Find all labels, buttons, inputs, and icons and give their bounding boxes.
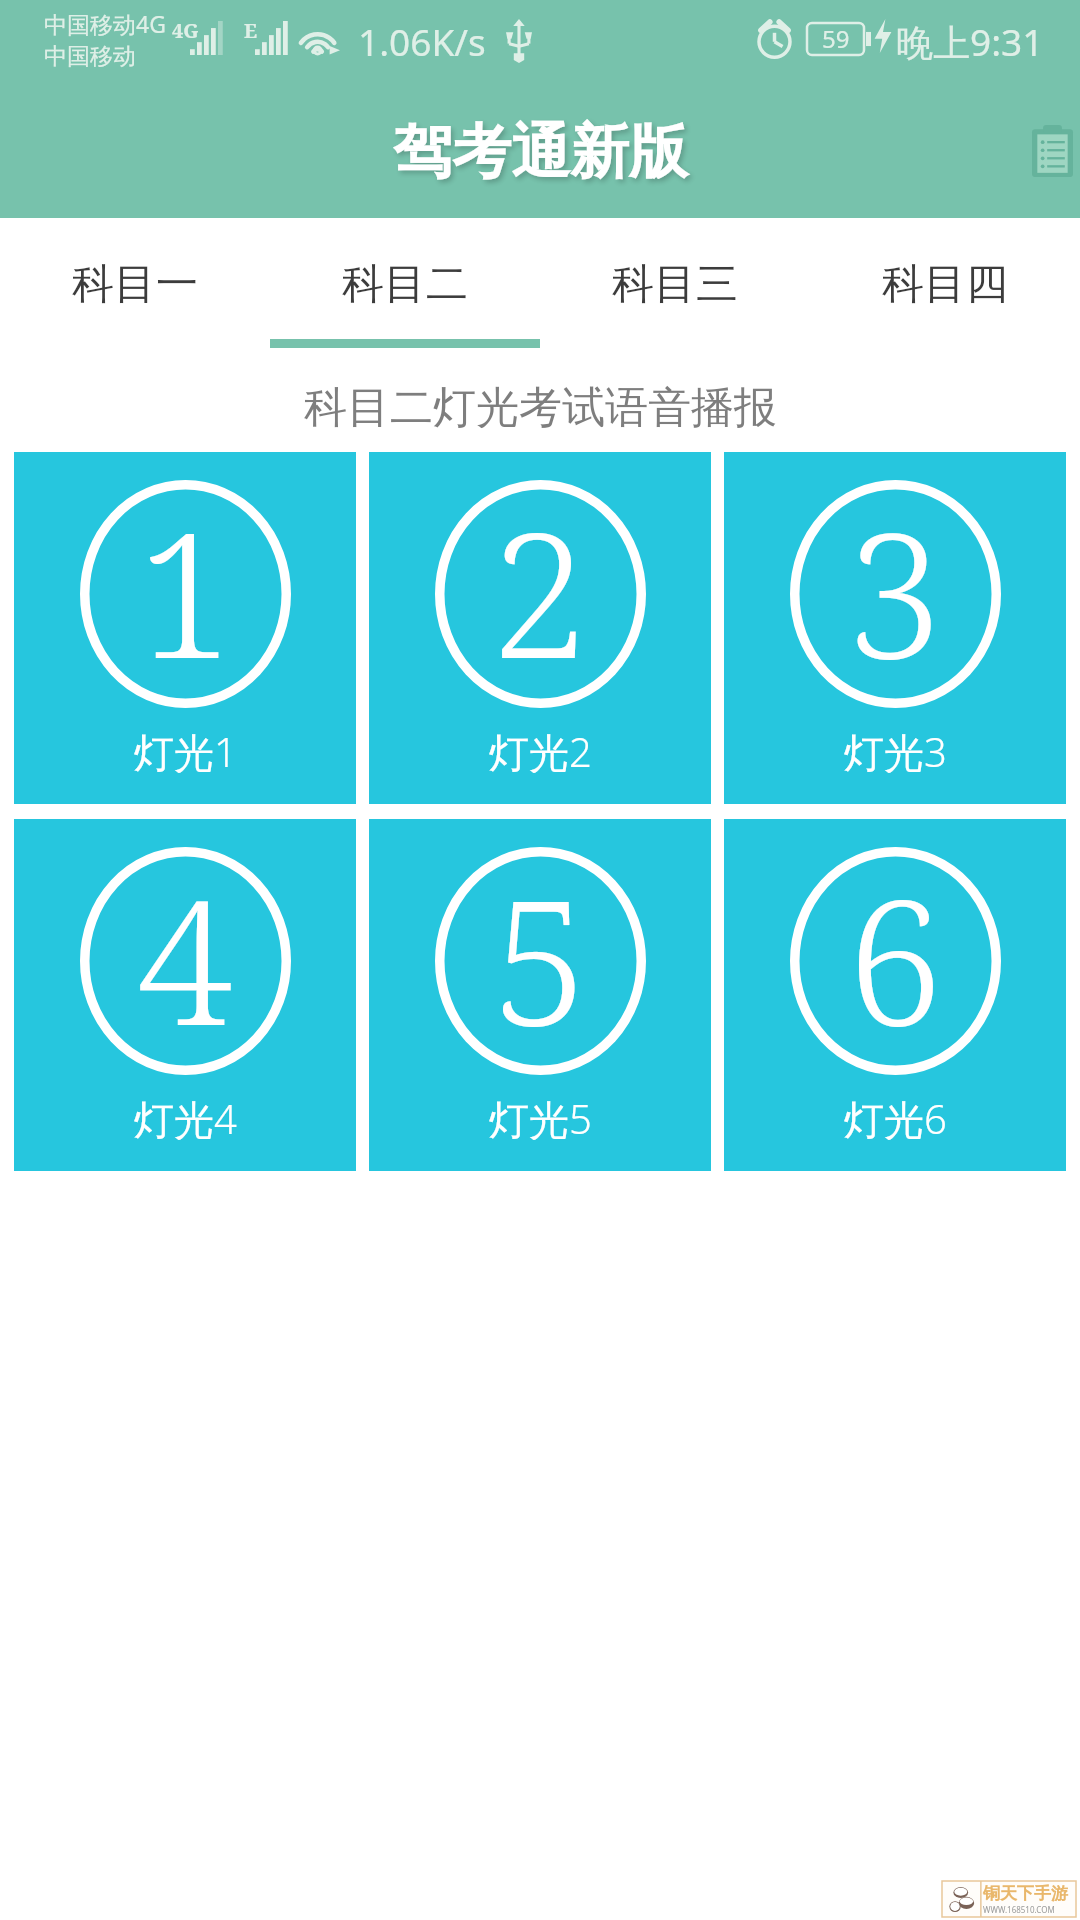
staticText: 灯光5 bbox=[489, 1091, 592, 1146]
staticText: 3 bbox=[847, 474, 944, 702]
button[interactable]: 3 bbox=[724, 452, 1066, 804]
staticText: 1 bbox=[137, 474, 234, 702]
staticText: 驾考通新版 bbox=[393, 115, 688, 189]
staticText: 灯光2 bbox=[489, 724, 592, 779]
staticText: 中国移动4G bbox=[44, 8, 166, 39]
staticText: 科目四 bbox=[882, 258, 1008, 311]
staticText: 灯光6 bbox=[844, 1091, 947, 1146]
button[interactable]: 科目四 bbox=[810, 218, 1080, 348]
staticText: 6 bbox=[847, 841, 944, 1069]
staticText: 灯光3 bbox=[844, 724, 947, 779]
staticText: 科目三 bbox=[612, 258, 738, 311]
button[interactable]: 1 bbox=[14, 452, 356, 804]
button[interactable]: 科目一 bbox=[0, 218, 270, 348]
staticText: 1.06K/s bbox=[358, 16, 486, 66]
staticText: 2 bbox=[492, 474, 589, 702]
staticText: 科目二 bbox=[342, 258, 468, 311]
staticText: 铜天下手游 bbox=[983, 1883, 1068, 1904]
button[interactable]: 科目三 bbox=[540, 218, 810, 348]
button[interactable]: 科目二 bbox=[270, 218, 540, 348]
staticText: 科目一 bbox=[72, 258, 198, 311]
staticText: E bbox=[244, 17, 258, 44]
staticText: 晚上9:31 bbox=[896, 16, 1044, 67]
staticText: 中国移动 bbox=[44, 42, 136, 71]
staticText: 59 bbox=[822, 22, 850, 55]
staticText: WWW.168510.COM bbox=[983, 1904, 1055, 1915]
button[interactable]: 6 bbox=[724, 819, 1066, 1171]
staticText: 灯光4 bbox=[134, 1091, 237, 1146]
button[interactable]: Exam records bbox=[993, 108, 1080, 193]
button[interactable]: 5 bbox=[369, 819, 711, 1171]
button[interactable]: 4 bbox=[14, 819, 356, 1171]
button[interactable]: 2 bbox=[369, 452, 711, 804]
staticText: 5 bbox=[492, 841, 589, 1069]
staticText: 4G bbox=[172, 17, 199, 44]
staticText: 4 bbox=[137, 841, 234, 1069]
staticText: 灯光1 bbox=[134, 724, 237, 779]
staticText: 科目二灯光考试语音播报 bbox=[304, 381, 777, 435]
